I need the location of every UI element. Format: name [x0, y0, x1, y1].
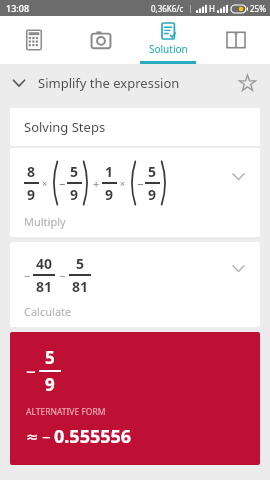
staticText: 5 — [70, 162, 79, 181]
staticText: × — [120, 177, 126, 189]
staticText: − — [24, 268, 31, 283]
staticText: Calculate — [24, 304, 72, 319]
staticText: Multiply — [24, 214, 66, 229]
button[interactable]: Solving Steps — [10, 108, 260, 146]
staticText: Solution — [149, 42, 188, 56]
staticText: Simplify the expression — [38, 74, 236, 92]
staticText: 9 — [70, 185, 79, 204]
staticText: Solving Steps — [24, 118, 106, 136]
staticText: 9 — [105, 185, 114, 204]
staticText: − — [137, 176, 144, 191]
staticText: 5 — [76, 254, 85, 273]
staticText: × — [42, 177, 48, 189]
staticText: H — [209, 3, 215, 14]
button[interactable]: Book — [202, 16, 270, 64]
staticText: 81 — [36, 277, 53, 296]
staticText: 9 — [27, 185, 36, 204]
staticText: ALTERNATIVE FORM — [26, 406, 106, 418]
staticText: 0,36K6/c — [151, 3, 184, 14]
staticText: 1 — [105, 162, 114, 181]
staticText: 13:08 — [6, 2, 30, 14]
staticText: + — [93, 176, 100, 191]
staticText: − — [26, 360, 36, 383]
button[interactable]: Calculator — [0, 16, 67, 64]
staticText: 9 — [45, 373, 55, 396]
staticText: 5 — [45, 346, 55, 369]
other: Expand step — [230, 168, 246, 184]
button[interactable]: Camera — [67, 16, 134, 64]
button[interactable]: Solution — [134, 16, 202, 64]
staticText: 40 — [36, 254, 53, 273]
button[interactable]: − — [10, 242, 260, 327]
staticText: − — [59, 176, 66, 191]
staticText: 5 — [148, 162, 157, 181]
staticText: 8 — [27, 162, 36, 181]
button[interactable]: − — [10, 332, 260, 465]
button[interactable]: 8 — [10, 148, 260, 237]
staticText: − — [42, 427, 51, 447]
staticText: 9 — [148, 185, 157, 204]
staticText: 81 — [72, 277, 89, 296]
staticText: 0.555556 — [54, 424, 132, 449]
button[interactable]: Favorite — [236, 72, 258, 94]
button[interactable]: Simplify the expression — [0, 64, 270, 102]
other: Expand step — [230, 260, 246, 276]
staticText: ≈ — [26, 428, 39, 445]
staticText: − — [59, 268, 66, 283]
staticText: 25% — [250, 3, 266, 14]
